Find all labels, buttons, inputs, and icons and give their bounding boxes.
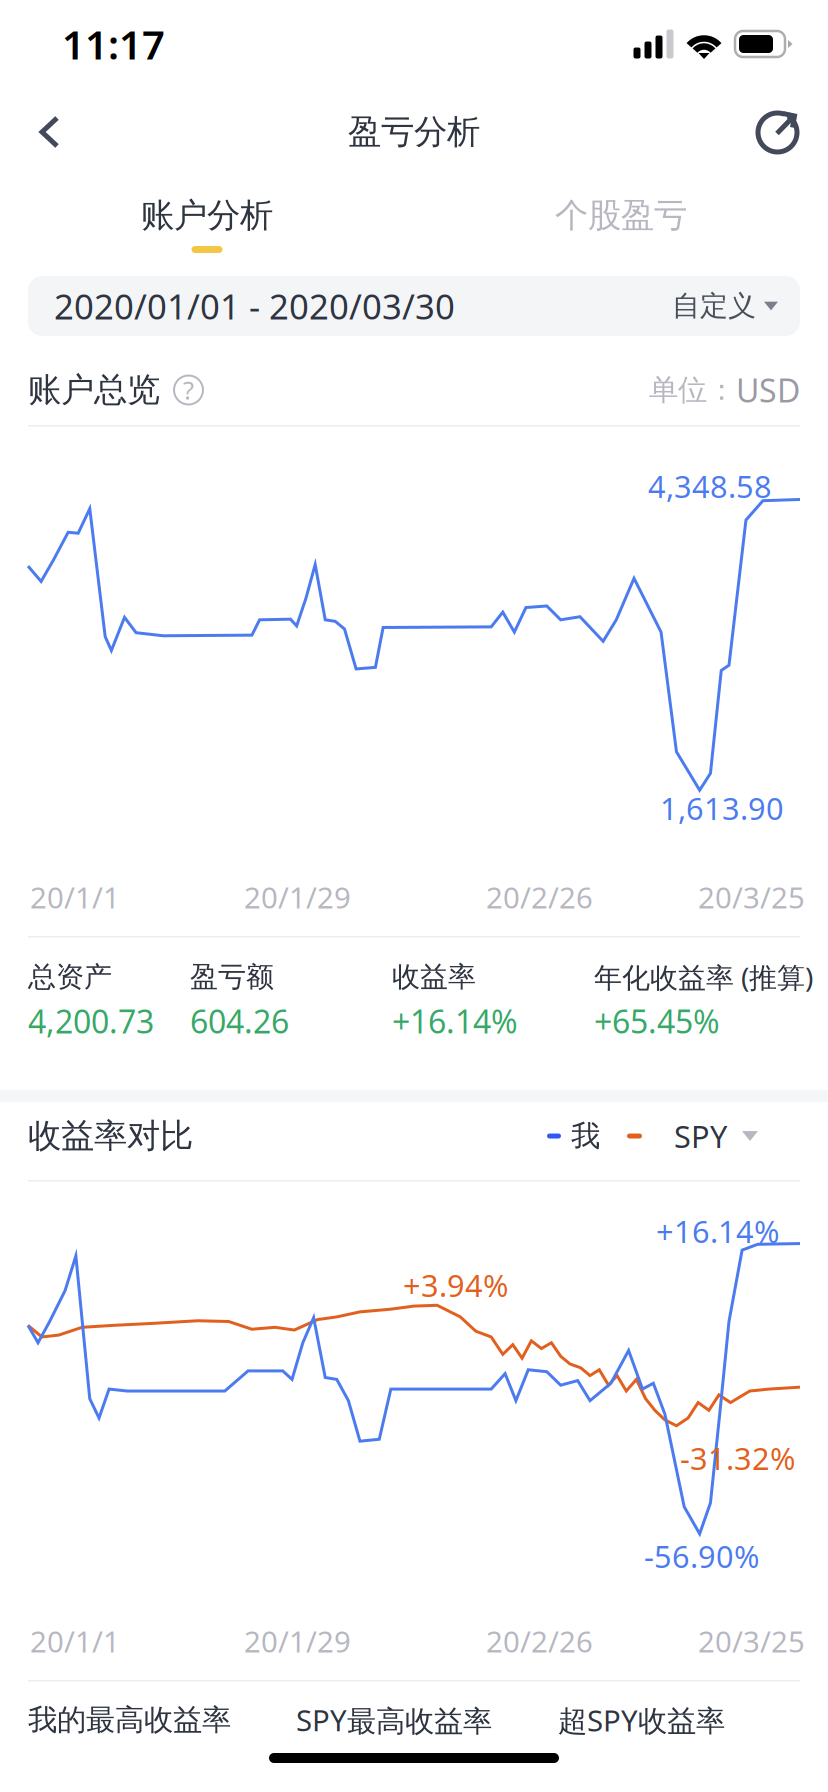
staticText: 收益率 [392, 960, 476, 994]
staticText: 1,613.90 [660, 788, 784, 828]
staticText: 2020/01/01 - 2020/03/30 [54, 283, 455, 329]
staticText: SPY最高收益率 [296, 1700, 492, 1739]
staticText: SPY [674, 1116, 727, 1156]
staticText: 年化收益率 (推算) [594, 958, 813, 996]
staticText: 收益率对比 [28, 1115, 193, 1156]
staticText: 我 [571, 1118, 600, 1154]
staticText: 20/2/26 [486, 877, 593, 916]
staticText: 盈亏额 [190, 960, 274, 994]
button[interactable]: Back [4, 88, 96, 176]
staticText: 超SPY收益率 [558, 1700, 725, 1739]
staticText: -31.32% [680, 1438, 795, 1478]
staticText: +3.94% [403, 1265, 508, 1305]
staticText: 604.26 [190, 1000, 289, 1042]
button[interactable]: 个股盈亏 [414, 176, 828, 272]
staticText: 20/1/1 [30, 877, 120, 916]
button[interactable]: Share [732, 88, 824, 176]
staticText: 我的最高收益率 [28, 1702, 231, 1738]
staticText: 盈亏分析 [348, 111, 480, 152]
staticText: 账户分析 [141, 195, 273, 236]
staticText: 自定义 [672, 289, 756, 323]
button[interactable]: 账户分析 [0, 176, 414, 272]
staticText: 20/1/1 [30, 1621, 120, 1660]
staticText: 20/1/29 [244, 1621, 351, 1660]
staticText: ? [183, 373, 194, 407]
staticText: 11:17 [62, 17, 165, 70]
staticText: 20/3/25 [698, 1621, 805, 1660]
staticText: USD [736, 369, 800, 411]
staticText: 4,348.58 [648, 466, 772, 506]
staticText: +65.45% [594, 1000, 720, 1042]
staticText: +16.14% [656, 1211, 779, 1251]
staticText: -56.90% [644, 1536, 759, 1576]
staticText: 20/1/29 [244, 877, 351, 916]
staticText: 20/2/26 [486, 1621, 593, 1660]
staticText: 20/3/25 [698, 877, 805, 916]
staticText: 账户总览 [28, 369, 160, 410]
staticText: +16.14% [392, 1000, 518, 1042]
staticText: 个股盈亏 [555, 195, 687, 236]
staticText: 4,200.73 [28, 1000, 154, 1042]
staticText: 总资产 [28, 960, 112, 994]
staticText: 单位： [649, 372, 736, 408]
button[interactable]: 2020/01/01 - 2020/03/30 [28, 276, 800, 336]
button[interactable]: SPY [674, 1116, 758, 1156]
